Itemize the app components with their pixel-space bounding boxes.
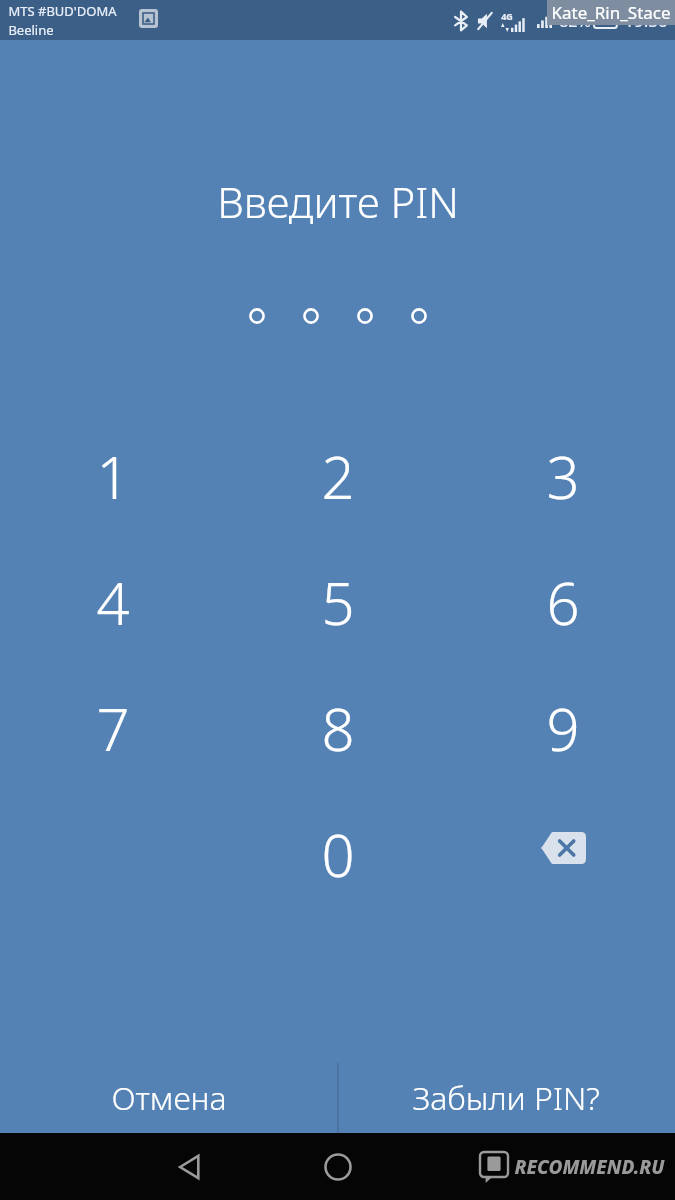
staticText: RECOMMEND.RU <box>514 1154 665 1180</box>
staticText: 7 <box>96 689 130 755</box>
staticText: 9 <box>546 689 580 755</box>
button[interactable]: Home <box>316 1145 360 1189</box>
staticText: 19:50 <box>624 9 668 32</box>
staticText: Отмена <box>111 1076 227 1120</box>
button[interactable]: Back <box>168 1145 212 1189</box>
button[interactable]: Отмена <box>0 1063 337 1133</box>
staticText: 8 <box>321 689 355 755</box>
button[interactable]: 0 <box>225 815 450 881</box>
button[interactable]: 7 <box>0 689 225 755</box>
staticText: MTS #BUD'DOMA <box>8 2 117 20</box>
staticText: 0 <box>321 815 355 881</box>
staticText: 82% <box>559 10 591 32</box>
button[interactable]: 2 <box>225 437 450 503</box>
button[interactable]: 6 <box>450 563 675 629</box>
button[interactable]: 3 <box>450 437 675 503</box>
staticText: Beeline <box>8 21 54 39</box>
staticText: 6 <box>546 563 580 629</box>
button[interactable]: 5 <box>225 563 450 629</box>
button[interactable]: 4 <box>0 563 225 629</box>
staticText: Kate_Rin_Stace <box>551 1 671 24</box>
staticText: Введите PIN <box>217 173 459 230</box>
button[interactable]: 8 <box>225 689 450 755</box>
staticText: 3 <box>546 437 580 503</box>
staticText: 4 <box>96 563 130 629</box>
staticText: 4G <box>501 10 513 22</box>
button[interactable]: Backspace <box>450 815 675 881</box>
button[interactable]: 1 <box>0 437 225 503</box>
staticText: Забыли PIN? <box>412 1076 600 1120</box>
button[interactable]: Забыли PIN? <box>337 1063 675 1133</box>
staticText: 5 <box>321 563 355 629</box>
button[interactable]: 9 <box>450 689 675 755</box>
staticText: 1 <box>96 437 130 503</box>
staticText: 2 <box>321 437 355 503</box>
